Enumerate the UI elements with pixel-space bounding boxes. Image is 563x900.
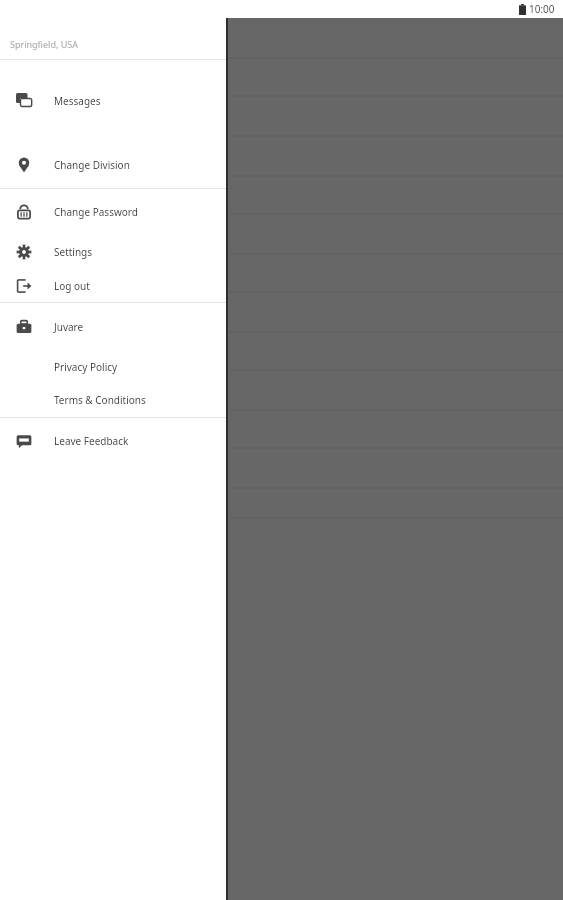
staticText: Change Password — [54, 205, 138, 219]
other: Change Division — [16, 157, 32, 173]
other: Leave Feedback — [16, 433, 32, 449]
staticText: Privacy Policy — [54, 360, 118, 374]
staticText: Terms & Conditions — [54, 393, 146, 407]
staticText: Log out — [54, 279, 90, 293]
button[interactable]: Springfield, USA — [0, 0, 226, 59]
staticText: Leave Feedback — [54, 434, 129, 448]
other: Messages — [16, 93, 32, 109]
button[interactable]: Change Password — [0, 189, 226, 235]
other: Log out — [16, 278, 32, 294]
staticText: Settings — [54, 245, 93, 259]
button[interactable]: Juvare — [0, 303, 226, 350]
staticText: 10:00 — [529, 2, 555, 16]
button[interactable]: Change Division — [0, 142, 226, 188]
button[interactable]: Settings — [0, 235, 226, 269]
button[interactable]: Terms & Conditions — [0, 383, 226, 417]
button[interactable]: Messages — [0, 60, 226, 142]
other: Settings — [16, 244, 32, 260]
button[interactable]: Leave Feedback — [0, 418, 226, 464]
button[interactable]: Privacy Policy — [0, 350, 226, 383]
staticText: Juvare — [54, 320, 84, 334]
staticText: Springfield, USA — [10, 38, 78, 50]
other: Change Password — [16, 204, 32, 220]
other: Juvare — [16, 319, 32, 335]
button[interactable]: Log out — [0, 269, 226, 302]
staticText: Change Division — [54, 158, 130, 172]
staticText: Messages — [54, 94, 101, 108]
